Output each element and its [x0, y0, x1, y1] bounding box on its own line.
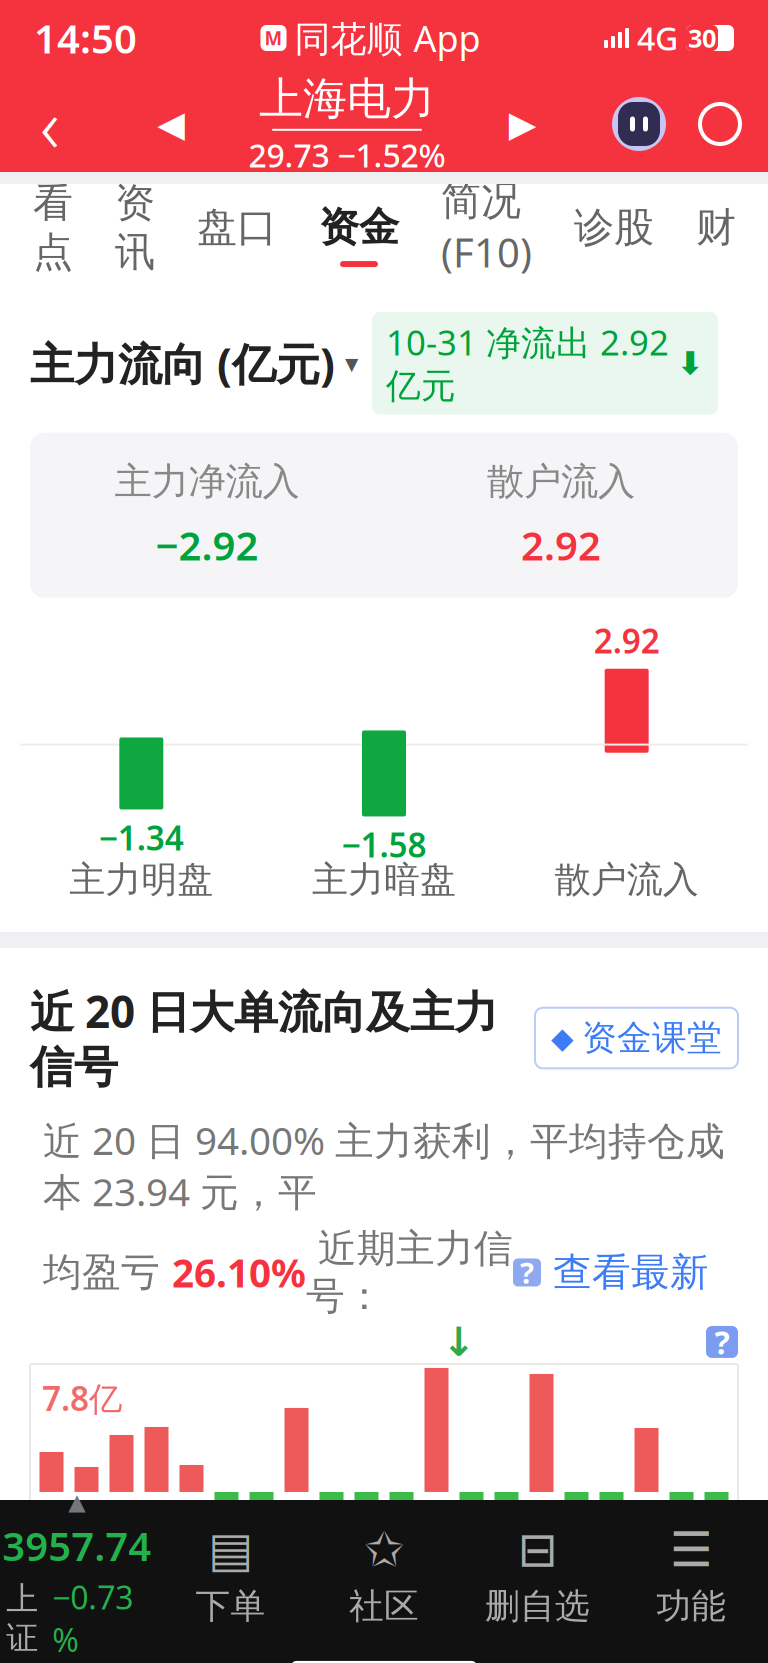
- button[interactable]: 资金: [298, 184, 420, 286]
- staticText: ?: [520, 1253, 534, 1292]
- staticText: 功能: [656, 1585, 726, 1627]
- staticText: ⊟: [518, 1522, 558, 1577]
- staticText: ?: [714, 1321, 729, 1363]
- staticText: 主力流向 (亿元): [30, 334, 335, 392]
- staticText: 10-31 净流出 2.92 亿元: [386, 319, 669, 408]
- staticText: 查看最新: [541, 1249, 709, 1296]
- staticText: 近 20 日 94.00% 主力获利，平均持仓成本 23.94 元，平: [43, 1114, 725, 1217]
- staticText: 资金课堂: [582, 1017, 722, 1059]
- staticText: 上海电力: [259, 72, 435, 126]
- staticText: 诊股: [574, 203, 654, 252]
- button[interactable]: 盘口: [176, 184, 298, 286]
- button[interactable]: ☰: [614, 1522, 768, 1628]
- staticText: 散户流入: [487, 459, 635, 504]
- button[interactable]: 智能助手: [600, 76, 678, 172]
- staticText: 29.73 −1.52%: [248, 134, 445, 176]
- button[interactable]: ✩: [307, 1522, 461, 1628]
- staticText: −5.2亿: [42, 1564, 141, 1608]
- staticText: ☰: [670, 1522, 713, 1577]
- staticText: 删自选: [485, 1585, 590, 1627]
- button[interactable]: 查看最新: [541, 1249, 709, 1296]
- button[interactable]: 返回: [6, 76, 94, 172]
- staticText: ▲: [68, 1489, 85, 1515]
- staticText: 盘口: [197, 203, 277, 252]
- button[interactable]: 图表说明: [706, 1326, 738, 1358]
- staticText: 09-26: [30, 1632, 117, 1663]
- staticText: 主力净流入: [114, 459, 299, 504]
- button[interactable]: 信号说明: [513, 1258, 541, 1286]
- staticText: −1.34: [99, 815, 184, 860]
- staticText: 4G: [637, 17, 678, 59]
- staticText: 近期主力信号：: [306, 1225, 513, 1320]
- staticText: 资金: [319, 203, 399, 252]
- staticText: ▤: [208, 1522, 253, 1577]
- button[interactable]: 看点: [12, 184, 94, 286]
- button[interactable]: ▤: [154, 1522, 307, 1628]
- button[interactable]: ⊟: [461, 1522, 614, 1628]
- staticText: 上证: [6, 1579, 38, 1658]
- staticText: ‹: [40, 74, 60, 174]
- staticText: ◆: [551, 1021, 574, 1055]
- staticText: −0.73%: [52, 1576, 133, 1661]
- button[interactable]: ▲: [0, 1489, 154, 1661]
- staticText: 均盈亏: [43, 1249, 172, 1296]
- staticText: −1.58: [341, 822, 426, 867]
- staticText: 14:50: [34, 11, 137, 64]
- staticText: 2.92: [594, 618, 660, 663]
- staticText: 下单: [195, 1585, 265, 1627]
- button[interactable]: 上一只股票: [139, 76, 203, 172]
- button[interactable]: 主力流向 (亿元): [30, 334, 358, 392]
- staticText: ⬇: [677, 345, 704, 381]
- button[interactable]: 资讯: [94, 184, 176, 286]
- staticText: ◀: [157, 104, 185, 144]
- button[interactable]: 搜索: [678, 76, 762, 172]
- staticText: 近 20 日大单流向及主力信号: [30, 982, 498, 1094]
- staticText: 3957.74: [2, 1519, 151, 1572]
- button[interactable]: 上海电力: [248, 76, 445, 172]
- button[interactable]: ◆: [535, 1008, 738, 1068]
- staticText: 社区: [349, 1585, 419, 1627]
- staticText: 2.92: [521, 518, 601, 572]
- staticText: 看点: [33, 178, 73, 277]
- staticText: 7.8亿: [42, 1376, 122, 1420]
- staticText: ▾: [345, 348, 358, 378]
- staticText: −2.92: [155, 518, 258, 572]
- staticText: ↓: [442, 1319, 476, 1365]
- staticText: 财: [696, 203, 736, 252]
- staticText: 主力暗盘: [312, 858, 456, 902]
- staticText: 26.10%: [172, 1247, 306, 1298]
- staticText: 同花顺 App: [294, 14, 480, 62]
- staticText: 散户流入: [555, 858, 699, 902]
- button[interactable]: 财: [675, 184, 757, 286]
- button[interactable]: 简况(F10): [420, 184, 553, 286]
- staticText: 主力明盘: [69, 858, 213, 902]
- staticText: 资讯: [115, 178, 155, 277]
- staticText: 简况(F10): [441, 176, 532, 279]
- staticText: 30: [688, 21, 716, 55]
- staticText: M: [264, 26, 282, 50]
- button[interactable]: 下一只股票: [491, 76, 555, 172]
- staticText: ▶: [509, 104, 537, 144]
- button[interactable]: 10-31 净流出 2.92 亿元: [372, 312, 718, 415]
- button[interactable]: 诊股: [553, 184, 675, 286]
- staticText: ✩: [364, 1522, 404, 1577]
